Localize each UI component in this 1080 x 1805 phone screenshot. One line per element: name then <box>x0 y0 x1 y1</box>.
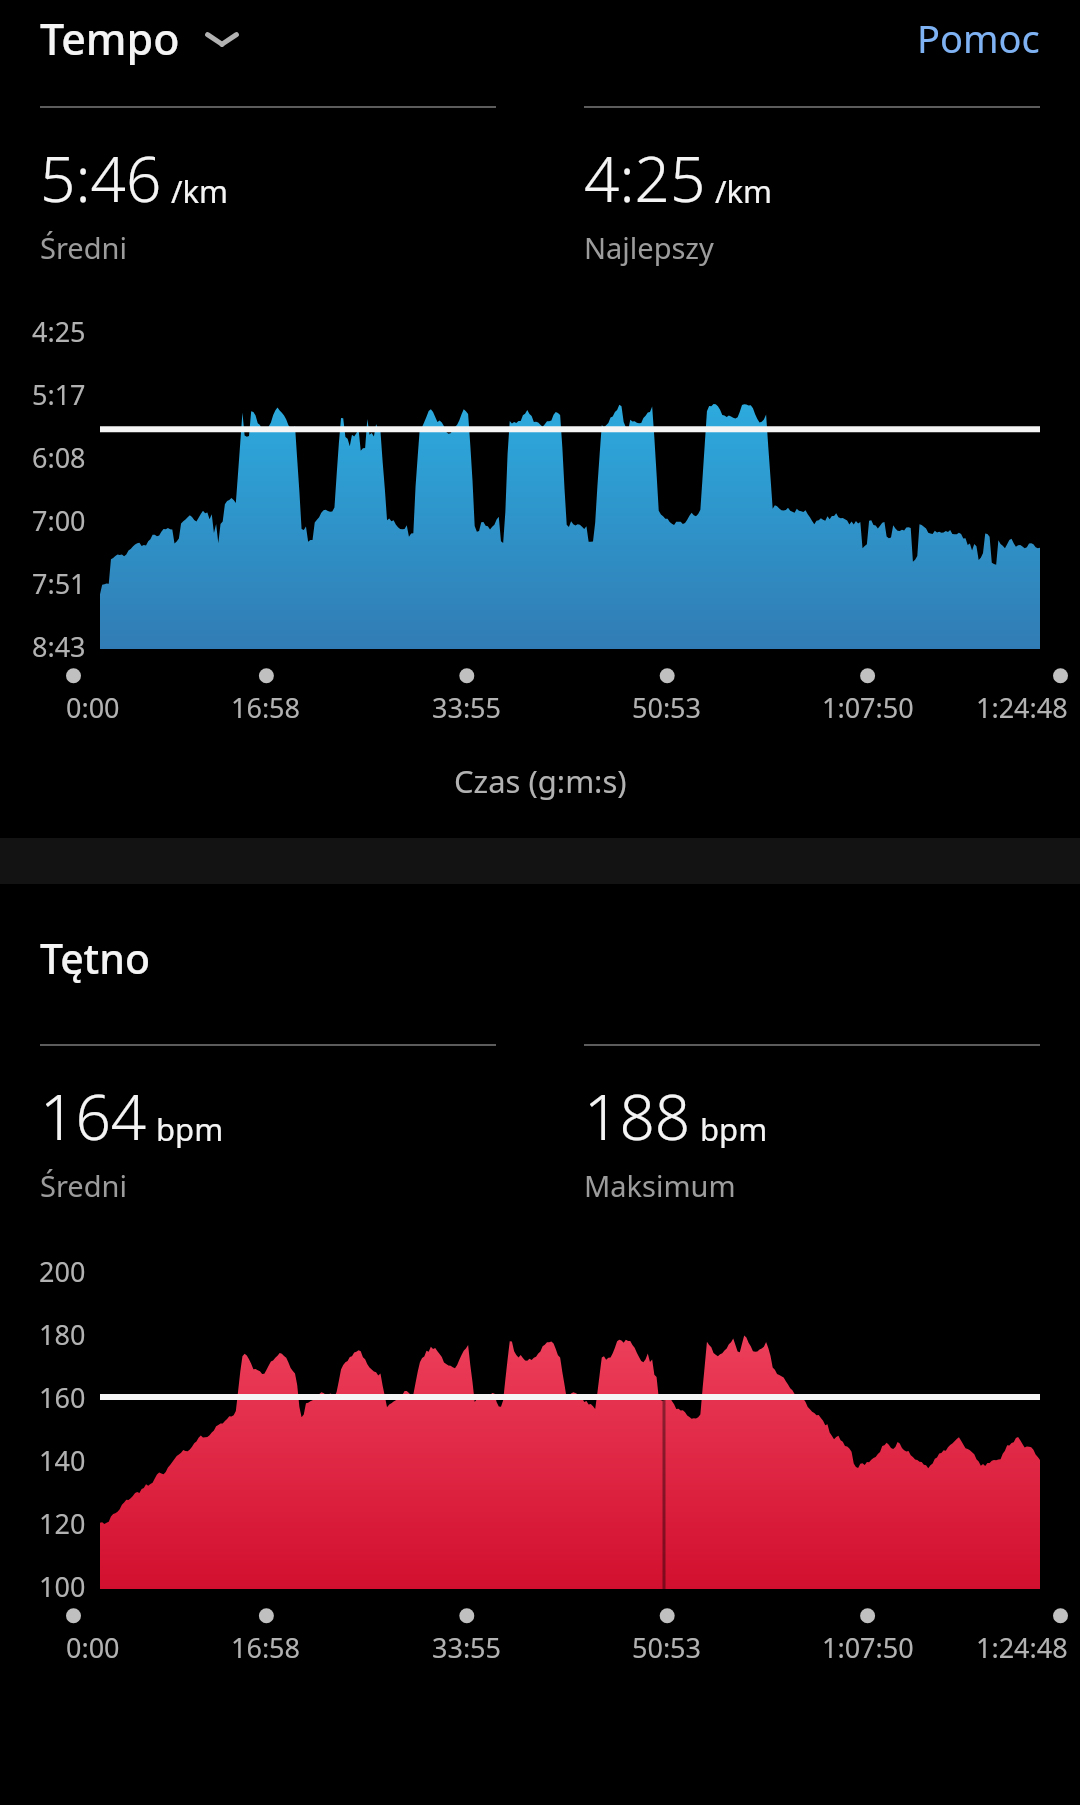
staticText: 1:07:50 <box>822 689 914 726</box>
staticText: 7:00 <box>32 502 86 539</box>
staticText: bpm <box>700 1108 768 1150</box>
staticText: bpm <box>156 1108 224 1150</box>
staticText: Pomoc <box>917 12 1040 64</box>
other: Zmień metrykę <box>204 27 240 51</box>
staticText: Maksimum <box>584 1166 736 1205</box>
staticText: 7:51 <box>32 565 86 602</box>
staticText: 0:00 <box>66 689 120 726</box>
staticText: 180 <box>39 1316 86 1353</box>
staticText: 1:24:48 <box>976 689 1068 726</box>
staticText: 5:17 <box>32 376 86 413</box>
staticText: Tempo <box>40 9 180 68</box>
staticText: Najlepszy <box>584 228 714 267</box>
staticText: Średni <box>40 1166 127 1205</box>
staticText: 160 <box>39 1379 86 1416</box>
staticText: 33:55 <box>432 1629 502 1666</box>
staticText: 0:00 <box>66 1629 120 1666</box>
staticText: 50:53 <box>632 1629 702 1666</box>
staticText: 5:46 <box>40 136 162 220</box>
staticText: 140 <box>39 1442 86 1479</box>
staticText: Czas (g:m:s) <box>454 760 627 802</box>
staticText: 188 <box>584 1074 691 1158</box>
staticText: 8:43 <box>32 628 86 665</box>
button[interactable]: Pomoc <box>877 2 1080 74</box>
staticText: 16:58 <box>231 689 301 726</box>
staticText: /km <box>715 170 773 212</box>
staticText: 6:08 <box>32 439 86 476</box>
staticText: 1:07:50 <box>822 1629 914 1666</box>
staticText: 200 <box>39 1253 86 1290</box>
staticText: Średni <box>40 228 127 267</box>
staticText: 120 <box>39 1505 86 1542</box>
staticText: 100 <box>39 1568 86 1605</box>
staticText: Tętno <box>40 930 151 986</box>
staticText: 16:58 <box>231 1629 301 1666</box>
staticText: 4:25 <box>584 136 706 220</box>
staticText: /km <box>171 170 229 212</box>
staticText: 50:53 <box>632 689 702 726</box>
staticText: 164 <box>40 1074 147 1158</box>
staticText: 1:24:48 <box>976 1629 1068 1666</box>
staticText: 4:25 <box>32 313 86 350</box>
button[interactable]: Tempo <box>0 3 260 74</box>
staticText: 33:55 <box>432 689 502 726</box>
